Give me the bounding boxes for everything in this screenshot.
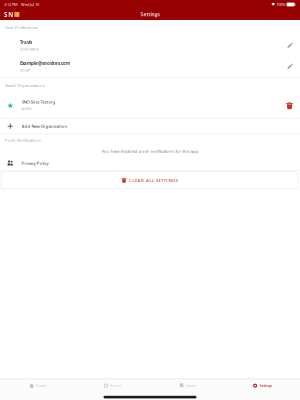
button[interactable]: SNO Home (0, 9, 19, 20)
staticText: Example@snosites.com (20, 60, 70, 66)
staticText: Travis (20, 39, 32, 45)
staticText: Add New Organization (21, 123, 67, 129)
staticText: Recent (110, 383, 121, 388)
staticText: Privacy Policy (21, 160, 48, 166)
staticText: N (8, 10, 13, 19)
staticText: Home (36, 383, 46, 388)
button[interactable]: CLEAR ALL SETTINGS (1, 172, 298, 189)
button[interactable]: Settings (225, 379, 300, 392)
staticText: Settings (140, 11, 159, 18)
button[interactable]: Travis (0, 35, 300, 56)
button[interactable]: Saved (150, 379, 225, 392)
button[interactable]: Add New Organization (0, 119, 300, 133)
button[interactable]: Example@snosites.com (0, 56, 300, 77)
staticText: Saved Organizations (5, 83, 45, 88)
staticText: SNO Sites Testing (21, 99, 55, 105)
button[interactable]: Home (0, 379, 75, 392)
staticText: User Preferences (5, 25, 38, 30)
staticText: Settings (259, 383, 272, 388)
staticText: You have disabled push notifications for… (101, 148, 198, 154)
staticText: Saved (186, 383, 196, 388)
staticText: CLEAR ALL SETTINGS (129, 177, 177, 183)
staticText: Username (20, 46, 39, 52)
staticText: 100% (276, 2, 285, 7)
button[interactable]: SNO Sites Testing (0, 93, 300, 118)
staticText: S (4, 10, 7, 19)
staticText: 3:12 PM Wed Jul 10 (4, 2, 39, 7)
staticText: active (21, 106, 31, 111)
staticText: Push Notifications (5, 137, 41, 143)
staticText: email (20, 67, 30, 73)
button[interactable]: Recent (75, 379, 150, 392)
button[interactable]: Privacy Policy (0, 156, 300, 170)
